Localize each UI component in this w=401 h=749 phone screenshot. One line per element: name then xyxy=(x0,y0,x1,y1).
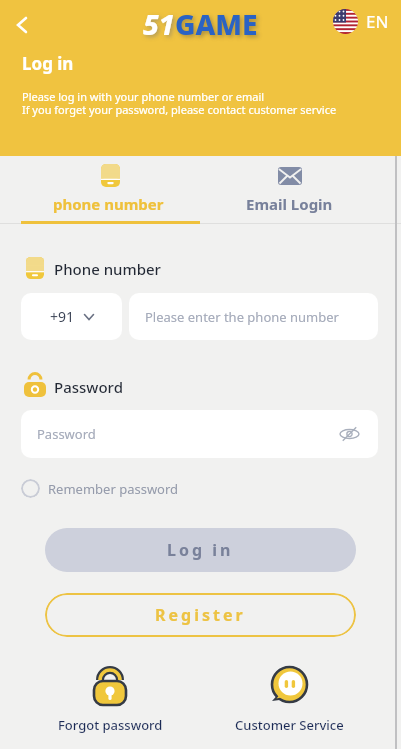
staticText: EN xyxy=(366,10,389,33)
staticText: GAME xyxy=(175,5,258,43)
button[interactable]: phone number xyxy=(0,156,200,225)
button[interactable]: Customer Service xyxy=(229,660,349,740)
button[interactable] xyxy=(6,8,38,40)
button[interactable]: Please enter the phone number xyxy=(129,293,378,340)
staticText: Forgot password xyxy=(58,716,163,734)
staticText: Phone number xyxy=(54,259,161,279)
staticText: 51 xyxy=(143,5,175,43)
button[interactable]: Log in xyxy=(45,528,356,572)
staticText: phone number xyxy=(53,194,164,214)
staticText: Email Login xyxy=(246,194,333,214)
staticText: Password xyxy=(37,425,96,443)
staticText: If you forget your password, please cont… xyxy=(22,102,337,117)
staticText: Log in xyxy=(167,539,234,561)
staticText: Password xyxy=(54,377,123,397)
staticText: Remember password xyxy=(48,480,179,498)
staticText: +91 xyxy=(50,307,75,326)
button[interactable]: EN xyxy=(333,9,389,34)
button[interactable]: Register xyxy=(45,593,356,637)
button[interactable]: Remember password xyxy=(21,479,179,498)
staticText: Log in xyxy=(22,52,74,75)
button[interactable]: Forgot password xyxy=(50,660,170,740)
staticText: Please enter the phone number xyxy=(145,308,339,326)
staticText: Please log in with your phone number or … xyxy=(22,89,265,104)
staticText: Register xyxy=(155,604,246,626)
button[interactable]: Password xyxy=(21,410,378,458)
staticText: Customer Service xyxy=(235,716,344,734)
button[interactable]: Email Login xyxy=(200,156,401,225)
button[interactable]: +91 xyxy=(21,293,122,340)
